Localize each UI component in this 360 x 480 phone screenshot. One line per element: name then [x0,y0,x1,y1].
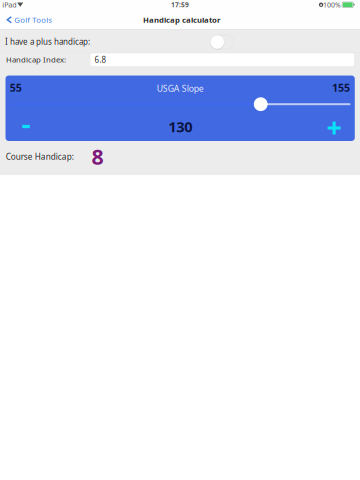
staticText: 155 [332,80,350,95]
staticText: 6.8 [94,54,106,65]
staticText: I have a plus handicap: [5,36,90,47]
button[interactable]: Golf Tools [0,9,58,30]
staticText: Handicap calculator [143,14,220,25]
button[interactable]: Increase slope [321,118,347,138]
staticText: Golf Tools [14,14,52,25]
button[interactable]: I have a plus handicap [210,35,234,49]
staticText: Course Handicap: [6,151,74,162]
button[interactable]: 6.8 [91,53,354,66]
staticText: 55 [10,80,22,95]
staticText: 100% [323,0,341,9]
staticText: iPad [2,0,16,10]
button[interactable]: Decrease slope [13,116,39,136]
staticText: 8 [91,142,103,171]
staticText: 130 [168,116,192,136]
staticText: Handicap Index: [6,54,66,65]
staticText: 17:59 [171,0,189,9]
staticText: USGA Slope [157,82,204,94]
